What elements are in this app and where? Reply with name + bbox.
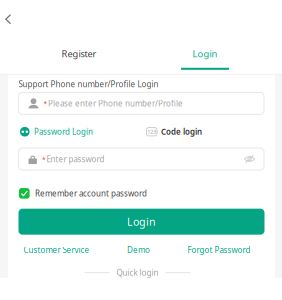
button[interactable]: Show password [244,154,255,164]
staticText: Quick login [116,267,158,278]
staticText: * [42,155,46,163]
button[interactable]: Password Login [20,125,93,138]
button[interactable]: Remember account password [19,188,147,199]
button[interactable]: Login [18,209,264,235]
staticText: Login [127,215,156,229]
staticText: 123 [147,128,156,135]
staticText: Please enter Phone number/Profile [48,98,183,109]
staticText: * [43,99,47,108]
staticText: Remember account password [35,188,147,199]
staticText: Demo [127,245,150,255]
staticText: Register [61,47,96,60]
staticText: Password Login [34,126,93,137]
button[interactable]: 123 [146,125,202,138]
button[interactable]: Customer Service [23,245,89,255]
button[interactable]: Demo [127,245,150,255]
button[interactable]: Forgot Password [187,245,250,255]
staticText: Enter password [46,154,104,164]
button[interactable]: Register [16,47,142,70]
button[interactable]: Back [0,0,24,47]
button[interactable]: Login [142,47,268,70]
staticText: Forgot Password [187,245,250,255]
staticText: Login [192,47,217,60]
staticText: Code login [161,126,202,137]
staticText: Customer Service [23,245,89,255]
staticText: Support Phone number/Profile Login [18,79,158,89]
